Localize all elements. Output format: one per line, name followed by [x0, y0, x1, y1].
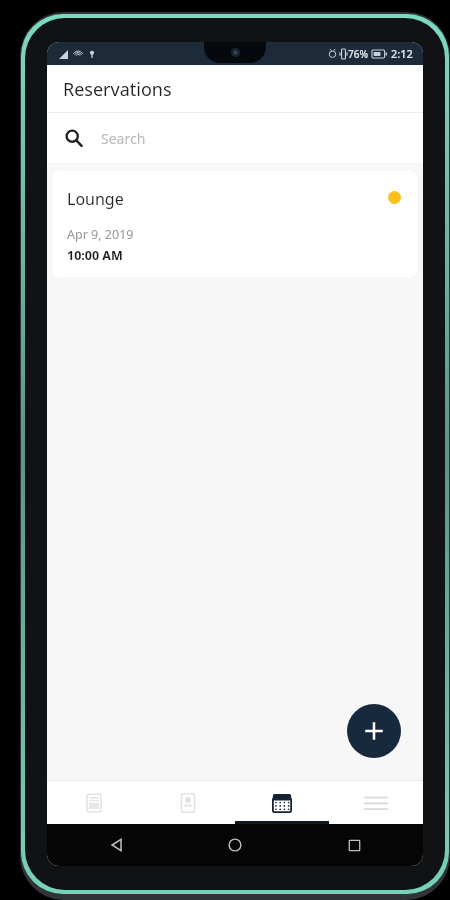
button[interactable]: Feed [47, 781, 141, 824]
staticText: Search [101, 129, 146, 148]
button[interactable]: Add reservation [347, 704, 401, 758]
staticText: 2:12 [391, 46, 413, 61]
staticText: 10:00 AM [67, 247, 123, 264]
button[interactable]: Lounge [53, 171, 417, 277]
button[interactable]: Home [222, 832, 248, 858]
staticText: Apr 9, 2019 [67, 226, 134, 243]
button[interactable]: Contacts [141, 781, 235, 824]
button[interactable]: Menu [329, 781, 423, 824]
button[interactable]: Recents [341, 832, 367, 858]
staticText: Lounge [67, 188, 124, 210]
staticText: 76% [348, 47, 368, 61]
button[interactable]: Back [103, 832, 129, 858]
button[interactable]: Calendar [235, 781, 329, 824]
button[interactable]: Search [47, 113, 423, 163]
staticText: Reservations [63, 77, 172, 102]
